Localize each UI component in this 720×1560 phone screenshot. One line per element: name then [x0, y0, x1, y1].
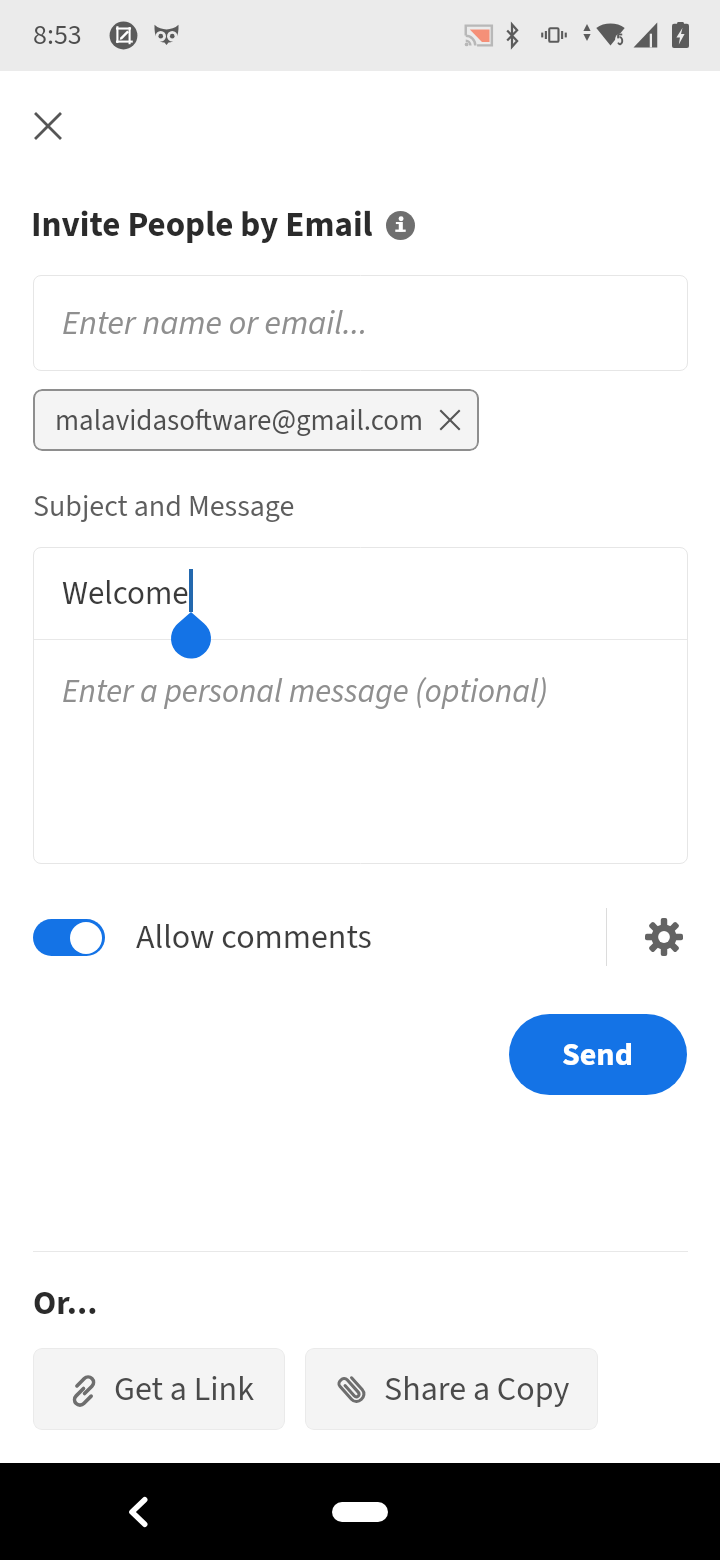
button[interactable]: Send	[509, 1014, 687, 1095]
button[interactable]: malavidasoftware@gmail.com	[33, 389, 479, 451]
button[interactable]: More information	[383, 208, 417, 242]
button[interactable]: Home	[300, 1492, 420, 1532]
staticText: Subject and Message	[33, 485, 295, 528]
staticText: Get a Link	[114, 1365, 255, 1413]
button[interactable]: Enter name or email...	[33, 275, 688, 371]
button[interactable]: Back	[116, 1490, 160, 1534]
staticText: Share a Copy	[384, 1365, 570, 1413]
button[interactable]: Close	[23, 101, 72, 150]
staticText: Welcome	[62, 570, 189, 617]
staticText: Enter name or email...	[62, 299, 368, 347]
staticText: Send	[562, 1032, 634, 1078]
staticText: Or...	[33, 1279, 98, 1327]
staticText: 8:53	[33, 15, 82, 55]
button[interactable]: Allow comments	[33, 909, 372, 965]
staticText: malavidasoftware@gmail.com	[55, 400, 424, 441]
button[interactable]: Welcome	[33, 547, 688, 639]
button[interactable]: Get a Link	[33, 1348, 285, 1430]
button[interactable]: Share a Copy	[305, 1348, 598, 1430]
staticText: Allow comments	[136, 913, 372, 961]
button[interactable]: Settings	[641, 914, 687, 960]
button[interactable]: Enter a personal message (optional)	[33, 640, 688, 864]
staticText: Invite People by Email	[31, 200, 373, 250]
staticText: Enter a personal message (optional)	[62, 668, 548, 715]
